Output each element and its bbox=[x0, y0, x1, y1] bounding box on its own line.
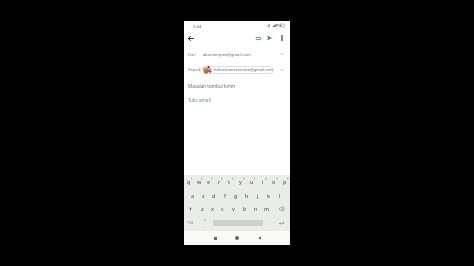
staticText: z bbox=[201, 205, 204, 212]
button[interactable]: r bbox=[214, 176, 224, 187]
staticText: w bbox=[197, 178, 202, 185]
button[interactable]: m bbox=[261, 203, 272, 214]
staticText: . bbox=[267, 221, 269, 226]
staticText: p bbox=[283, 178, 287, 185]
button[interactable]: s bbox=[198, 190, 208, 201]
staticText: m bbox=[264, 205, 270, 212]
staticText: c bbox=[221, 205, 224, 212]
button[interactable]: u bbox=[246, 176, 257, 187]
staticText: 9 bbox=[276, 177, 278, 181]
staticText: f bbox=[224, 192, 226, 199]
staticText: hdicostumerservice@gmail.com bbox=[214, 67, 273, 72]
button[interactable]: a bbox=[188, 190, 198, 201]
button[interactable]: Shift bbox=[184, 203, 197, 214]
staticText: Dari bbox=[188, 52, 197, 58]
button[interactable]: Space bbox=[213, 218, 263, 228]
button[interactable]: i bbox=[257, 176, 268, 187]
button[interactable]: Tulis email bbox=[184, 93, 290, 106]
button[interactable]: f bbox=[219, 190, 230, 201]
staticText: ?123 bbox=[187, 221, 194, 225]
staticText: h bbox=[245, 192, 249, 199]
staticText: 0 bbox=[287, 177, 289, 181]
button[interactable]: y bbox=[235, 176, 246, 187]
staticText: akuntempex@gmail.com bbox=[203, 52, 251, 58]
staticText: u bbox=[250, 178, 254, 185]
staticText: k bbox=[267, 192, 271, 199]
button[interactable]: Enter bbox=[276, 218, 286, 228]
staticText: d bbox=[212, 192, 216, 199]
button[interactable]: v bbox=[228, 203, 239, 214]
staticText: s bbox=[202, 192, 205, 199]
staticText: , bbox=[204, 222, 206, 227]
staticText: r bbox=[218, 178, 221, 185]
staticText: j bbox=[257, 192, 259, 199]
other: Expand recipients bbox=[279, 67, 284, 72]
staticText: 6 bbox=[243, 177, 245, 181]
staticText: i bbox=[262, 178, 264, 185]
staticText: v bbox=[232, 205, 235, 212]
button[interactable]: x bbox=[207, 203, 217, 214]
staticText: 3 bbox=[211, 177, 213, 181]
button[interactable]: Back bbox=[185, 32, 197, 44]
button[interactable]: w bbox=[194, 176, 204, 187]
staticText: b bbox=[243, 205, 247, 212]
staticText: q bbox=[187, 178, 191, 185]
staticText: 7 bbox=[254, 177, 256, 181]
button[interactable]: p bbox=[279, 176, 290, 187]
button[interactable]: k bbox=[263, 190, 274, 201]
button[interactable]: Masalah tombol kirim bbox=[184, 78, 290, 93]
button[interactable]: Recent apps bbox=[209, 232, 221, 244]
button[interactable]: Back bbox=[253, 232, 265, 244]
button[interactable]: Dari bbox=[184, 46, 290, 62]
button[interactable]: More options bbox=[276, 32, 288, 44]
staticText: e bbox=[207, 178, 211, 185]
staticText: o bbox=[272, 178, 276, 185]
button[interactable]: z bbox=[197, 203, 207, 214]
button[interactable]: b bbox=[239, 203, 250, 214]
staticText: x bbox=[211, 205, 214, 212]
button[interactable]: c bbox=[217, 203, 228, 214]
staticText: 4 bbox=[221, 177, 223, 181]
staticText: 2 bbox=[201, 177, 203, 181]
button[interactable]: j bbox=[252, 190, 263, 201]
staticText: l bbox=[279, 192, 281, 199]
button[interactable]: Emoji and comma bbox=[200, 218, 210, 228]
button[interactable]: Attach file bbox=[252, 32, 264, 44]
button[interactable]: Backspace bbox=[272, 203, 290, 214]
staticText: 8 bbox=[265, 177, 267, 181]
button[interactable]: ?123 bbox=[185, 218, 195, 228]
staticText: 5 bbox=[232, 177, 234, 181]
button[interactable]: t bbox=[224, 176, 235, 187]
staticText: g bbox=[234, 192, 238, 199]
staticText: n bbox=[254, 205, 258, 212]
button[interactable]: o bbox=[268, 176, 279, 187]
button[interactable]: e bbox=[204, 176, 214, 187]
staticText: Kepada bbox=[188, 67, 203, 73]
button[interactable]: g bbox=[230, 190, 241, 201]
button[interactable]: Kepada bbox=[184, 62, 290, 78]
button[interactable]: n bbox=[250, 203, 261, 214]
staticText: 3:44 bbox=[193, 23, 202, 29]
button[interactable]: Send bbox=[264, 32, 276, 44]
staticText: t bbox=[228, 178, 231, 185]
staticText: a bbox=[191, 192, 195, 199]
other: Expand sender bbox=[279, 51, 284, 56]
button[interactable]: h bbox=[241, 190, 252, 201]
staticText: Masalah tombol kirim bbox=[188, 83, 236, 89]
button[interactable]: q bbox=[184, 176, 194, 187]
staticText: Tulis email bbox=[188, 97, 211, 103]
button[interactable]: d bbox=[208, 190, 219, 201]
button[interactable]: Home bbox=[231, 232, 243, 244]
staticText: y bbox=[239, 178, 242, 185]
staticText: 1 bbox=[191, 177, 193, 181]
button[interactable]: l bbox=[274, 190, 285, 201]
